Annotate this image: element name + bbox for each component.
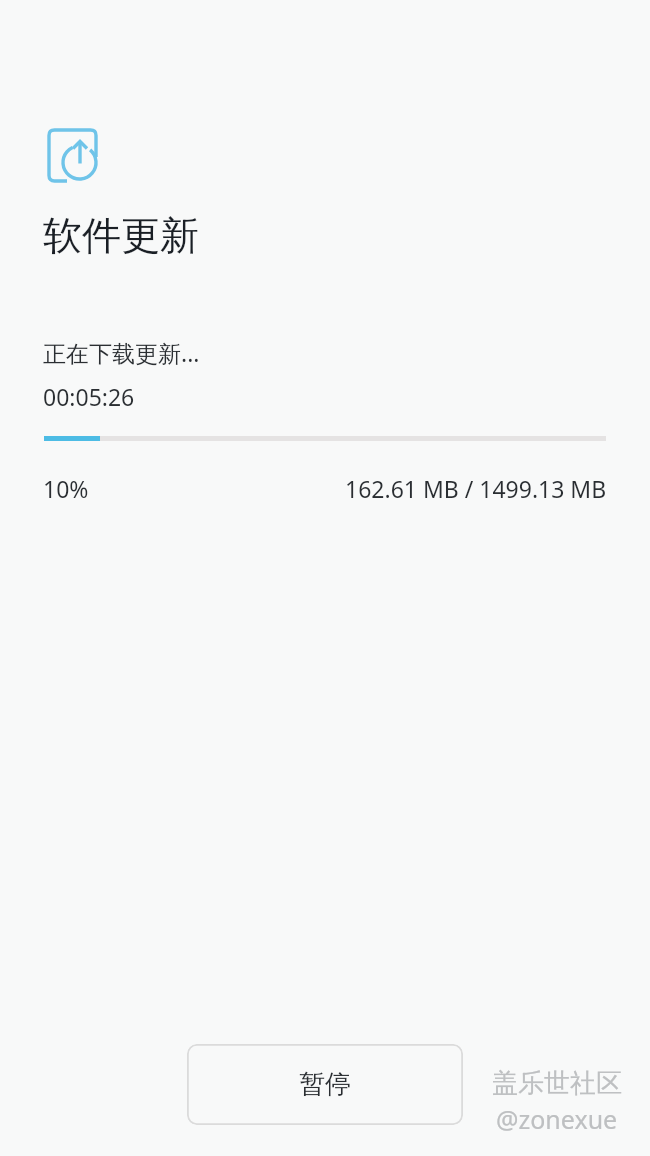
staticText: 162.61 MB / 1499.13 MB — [345, 473, 607, 504]
staticText: 暂停 — [299, 1068, 351, 1101]
staticText: @zonexue — [496, 1102, 618, 1136]
other: Software update — [44, 124, 104, 188]
staticText: 10% — [43, 473, 89, 504]
staticText: 00:05:26 — [43, 381, 135, 412]
staticText: 盖乐世社区 — [492, 1067, 622, 1100]
staticText: 正在下载更新... — [43, 337, 200, 368]
button[interactable]: 暂停 — [187, 1044, 463, 1125]
staticText: 软件更新 — [43, 211, 199, 260]
